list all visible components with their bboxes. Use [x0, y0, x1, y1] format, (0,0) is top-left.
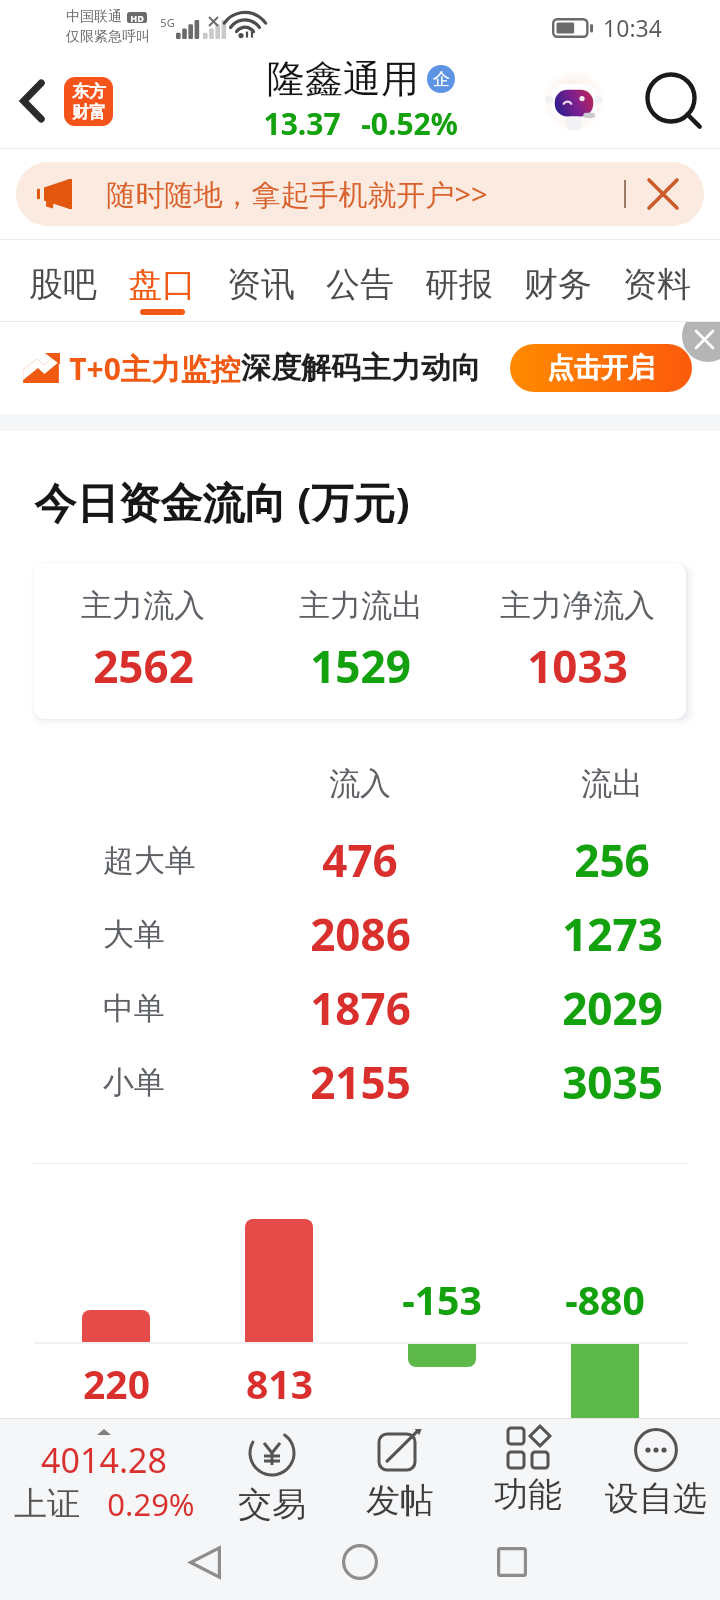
staticText: 财务 [524, 263, 592, 306]
staticText: 5G [160, 15, 175, 30]
button[interactable]: 资讯 [227, 240, 295, 321]
button[interactable]: T+0主力监控 [0, 322, 720, 414]
staticText: 流入 [329, 764, 391, 803]
button[interactable]: 财务 [524, 240, 592, 321]
staticText: 资料 [623, 263, 691, 306]
staticText: 2562 [93, 636, 194, 696]
staticText: 深度解码主力动向 [241, 349, 481, 387]
staticText: HD [130, 12, 144, 23]
staticText: 4014.28 [41, 1437, 167, 1483]
staticText: 中国联通 [66, 8, 122, 26]
staticText: 2086 [310, 904, 411, 964]
staticText: 主力流出 [299, 586, 423, 625]
staticText: 研报 [425, 263, 493, 306]
button[interactable]: Back [175, 1532, 235, 1592]
button[interactable]: Close advertisement [682, 322, 720, 362]
button[interactable]: 功能 [464, 1419, 592, 1522]
staticText: 超大单 [103, 841, 196, 880]
staticText: 企 [433, 69, 450, 90]
staticText: 流出 [581, 764, 643, 803]
staticText: 中单 [103, 989, 165, 1028]
button[interactable]: 资料 [623, 240, 691, 321]
button[interactable]: Recents [482, 1532, 542, 1592]
staticText: 上证 [14, 1483, 80, 1522]
staticText: 3035 [562, 1052, 663, 1112]
staticText: 盘口 [128, 263, 196, 306]
staticText: 1273 [562, 904, 663, 964]
button[interactable]: Home [330, 1532, 390, 1592]
staticText: 公告 [326, 263, 394, 306]
button[interactable]: 研报 [425, 240, 493, 321]
staticText: 资讯 [227, 263, 295, 306]
staticText: 仅限紧急呼叫 [66, 28, 150, 46]
button[interactable]: 发帖 [336, 1419, 464, 1522]
button[interactable]: 小单 [0, 1045, 720, 1119]
button[interactable]: 盘口 [128, 240, 196, 321]
staticText: 0.29% [107, 1483, 195, 1522]
staticText: -0.52% [361, 103, 458, 144]
button[interactable]: 4014.28 [0, 1419, 208, 1522]
staticText: 2155 [310, 1052, 411, 1112]
staticText: 隆鑫通用 [267, 55, 419, 103]
staticText: 发帖 [366, 1479, 434, 1522]
staticText: -880 [565, 1273, 645, 1326]
staticText: 东方 [72, 81, 106, 102]
button[interactable]: 点击开启 [510, 344, 692, 392]
staticText: 随时随地，拿起手机就开户>> [106, 174, 488, 214]
button[interactable]: 随时随地，拿起手机就开户>> [16, 162, 704, 226]
staticText: 主力净流入 [500, 586, 655, 625]
staticText: 813 [246, 1357, 313, 1410]
staticText: 设自选 [605, 1477, 707, 1520]
button[interactable]: 主力流入 [34, 563, 686, 719]
staticText: 1033 [527, 636, 628, 696]
staticText: -153 [402, 1273, 482, 1326]
button[interactable]: 股吧 [29, 240, 97, 321]
staticText: 256 [574, 830, 650, 890]
staticText: 今日资金流向 (万元) [34, 473, 410, 530]
button[interactable]: Back [0, 69, 64, 133]
button[interactable]: 中单 [0, 971, 720, 1045]
staticText: 功能 [494, 1473, 562, 1516]
button[interactable]: 超大单 [0, 823, 720, 897]
staticText: 点击开启 [547, 351, 655, 385]
staticText: 财富 [72, 102, 106, 123]
button[interactable]: 大单 [0, 897, 720, 971]
button[interactable]: AI assistant [543, 70, 605, 132]
staticText: 大单 [103, 915, 165, 954]
staticText: 220 [83, 1357, 150, 1410]
staticText: 1876 [310, 978, 411, 1038]
staticText: 1529 [310, 636, 411, 696]
staticText: 小单 [103, 1063, 165, 1102]
button[interactable]: 公告 [326, 240, 394, 321]
button[interactable]: East Money home [64, 77, 113, 126]
staticText: 交易 [238, 1483, 306, 1522]
staticText: 476 [322, 830, 398, 890]
staticText: T+0主力监控 [69, 348, 241, 389]
button[interactable]: 设自选 [592, 1419, 720, 1522]
staticText: 2029 [562, 978, 663, 1038]
staticText: 主力流入 [81, 586, 205, 625]
staticText: 股吧 [29, 263, 97, 306]
button[interactable]: 交易 [208, 1419, 336, 1522]
staticText: 13.37 [263, 103, 341, 144]
staticText: 10:34 [603, 12, 662, 43]
button[interactable]: Search [638, 66, 708, 136]
